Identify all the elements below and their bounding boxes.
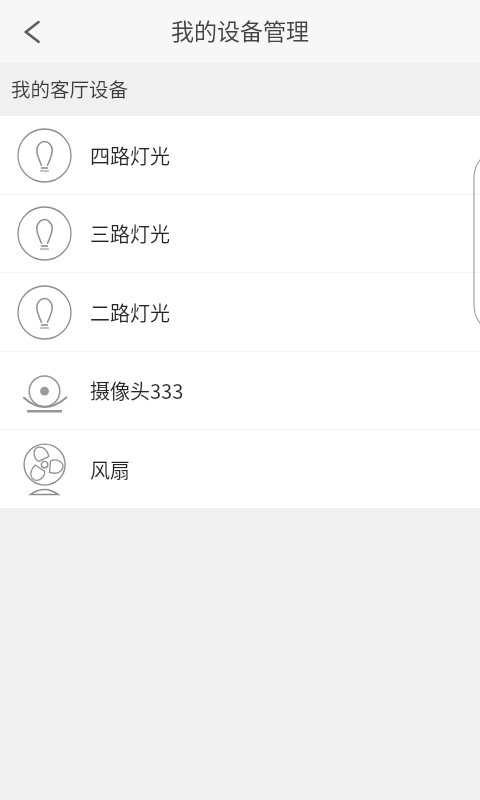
button[interactable]: 四路灯光 <box>0 116 480 194</box>
button[interactable]: 摄像头333 <box>0 352 480 429</box>
button[interactable]: Back <box>0 4 56 60</box>
staticText: 二路灯光 <box>90 298 170 327</box>
button[interactable]: 风扇 <box>0 430 480 508</box>
staticText: 我的客厅设备 <box>11 74 129 102</box>
button[interactable]: 二路灯光 <box>0 273 480 351</box>
staticText: 我的设备管理 <box>171 13 309 46</box>
staticText: 风扇 <box>90 455 130 484</box>
staticText: 四路灯光 <box>90 141 170 170</box>
staticText: 三路灯光 <box>90 219 170 248</box>
staticText: 摄像头333 <box>90 376 184 405</box>
button[interactable]: 三路灯光 <box>0 195 480 272</box>
